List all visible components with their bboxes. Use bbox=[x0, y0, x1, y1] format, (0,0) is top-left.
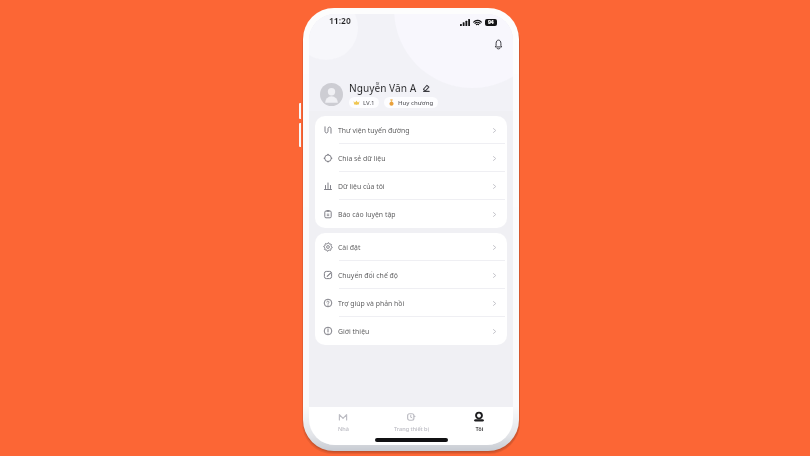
button[interactable]: Dữ liệu của tôi bbox=[315, 172, 507, 200]
staticText: Dữ liệu của tôi bbox=[338, 182, 385, 191]
button[interactable]: Notifications bbox=[489, 35, 507, 53]
button[interactable]: Tôi bbox=[445, 409, 513, 434]
staticText: Trang thiết bị bbox=[394, 425, 429, 433]
button[interactable]: Chia sẻ dữ liệu bbox=[315, 144, 507, 172]
staticText: Huy chương bbox=[398, 99, 434, 107]
staticText: Thư viện tuyến đường bbox=[338, 126, 410, 135]
button[interactable]: Huy chương bbox=[384, 97, 438, 108]
button[interactable]: Trợ giúp và phản hồi bbox=[315, 289, 507, 317]
button[interactable]: Báo cáo luyện tập bbox=[315, 200, 507, 228]
staticText: Nguyễn Văn A bbox=[349, 81, 417, 95]
staticText: Trợ giúp và phản hồi bbox=[338, 299, 405, 308]
staticText: LV.1 bbox=[363, 99, 375, 107]
staticText: Chuyển đổi chế độ bbox=[338, 271, 398, 280]
staticText: 11:20 bbox=[329, 15, 351, 27]
button[interactable]: Giới thiệu bbox=[315, 317, 507, 345]
button[interactable]: Cài đặt bbox=[315, 233, 507, 261]
button[interactable]: Nhà bbox=[309, 409, 377, 434]
staticText: Cài đặt bbox=[338, 243, 361, 252]
button[interactable]: Trang thiết bị bbox=[377, 409, 445, 434]
button[interactable]: LV.1 bbox=[349, 97, 379, 108]
button[interactable]: Nguyễn Văn A bbox=[320, 81, 438, 108]
staticText: Nhà bbox=[338, 425, 349, 433]
button[interactable]: Thư viện tuyến đường bbox=[315, 116, 507, 144]
staticText: Báo cáo luyện tập bbox=[338, 210, 396, 219]
staticText: Chia sẻ dữ liệu bbox=[338, 154, 386, 163]
staticText: Tôi bbox=[475, 425, 484, 433]
button[interactable]: Chuyển đổi chế độ bbox=[315, 261, 507, 289]
staticText: Giới thiệu bbox=[338, 327, 370, 336]
staticText: 94 bbox=[488, 19, 494, 26]
